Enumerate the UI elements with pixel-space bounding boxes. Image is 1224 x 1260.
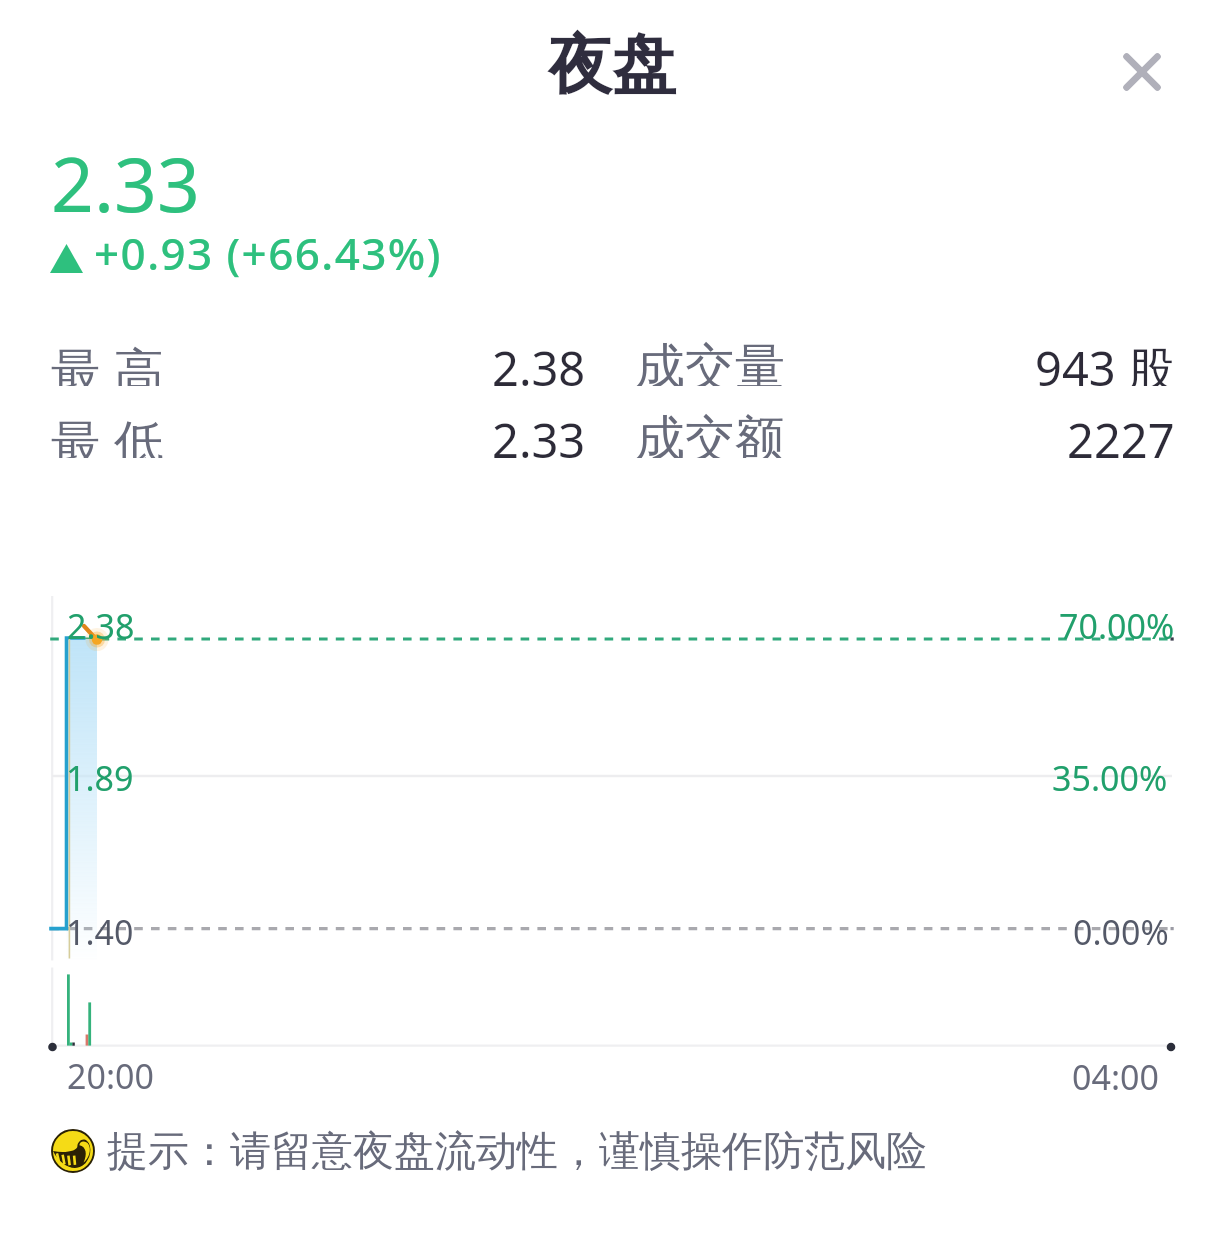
staticText: 成交额 (635, 408, 785, 458)
staticText: 2.33 (51, 132, 200, 234)
staticText: 最 低 (51, 408, 164, 458)
staticText: 夜盘 (548, 25, 676, 106)
staticText: 04:00 (1072, 1054, 1159, 1100)
staticText: 35.00% (1052, 755, 1168, 801)
staticText: 1.40 (66, 909, 134, 955)
staticText: 2227 (1067, 408, 1175, 458)
button[interactable]: Close (1108, 38, 1176, 106)
staticText: 70.00% (1059, 603, 1175, 649)
staticText: 0.00% (1073, 909, 1169, 955)
staticText: 2.33 (492, 408, 586, 458)
staticText: 2.38 (67, 603, 135, 649)
staticText: 20:00 (67, 1053, 154, 1099)
staticText: 1.89 (66, 755, 134, 801)
staticText: 最 高 (51, 336, 164, 386)
staticText: +0.93 (+66.43%) (94, 223, 442, 283)
staticText: 943 股 (1035, 336, 1175, 386)
staticText: 2.38 (492, 336, 586, 386)
staticText: 提示：请留意夜盘流动性，谨慎操作防范风险 (107, 1126, 927, 1178)
staticText: 成交量 (635, 336, 785, 386)
